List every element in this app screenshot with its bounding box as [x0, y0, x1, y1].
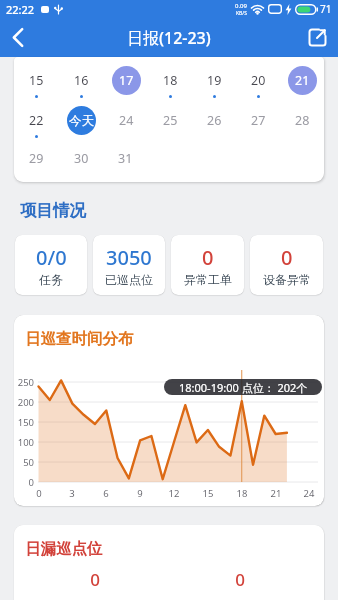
button[interactable]: 17	[112, 66, 141, 95]
button[interactable]: 0	[250, 235, 323, 295]
button[interactable]: 26	[200, 106, 229, 135]
staticText: 100	[14, 436, 34, 449]
staticText: 27	[251, 112, 266, 129]
button[interactable]: 29	[22, 144, 51, 173]
staticText: 19	[207, 72, 222, 89]
staticText: 0.09	[235, 2, 247, 10]
staticText: 31	[118, 150, 133, 167]
staticText: 0	[202, 244, 214, 271]
staticText: 今天	[69, 113, 94, 129]
staticText: 异常工单	[184, 272, 232, 287]
staticText: 0	[75, 568, 115, 591]
button[interactable]: 今天	[67, 106, 96, 135]
staticText: 0	[14, 476, 34, 489]
staticText: 日报(12-23)	[127, 27, 211, 49]
staticText: 29	[29, 150, 44, 167]
button[interactable]: 15	[22, 66, 51, 95]
staticText: 12	[165, 487, 183, 500]
button[interactable]: 27	[244, 106, 273, 135]
staticText: 24	[300, 487, 318, 500]
button[interactable]	[0, 18, 40, 57]
staticText: 25	[163, 112, 178, 129]
staticText: 150	[14, 416, 34, 429]
staticText: 设备异常	[263, 272, 311, 287]
button[interactable]: 20	[244, 66, 273, 95]
button[interactable]: 0	[171, 235, 244, 295]
staticText: 18:00-19:00 点位： 202个	[179, 380, 308, 395]
staticText: 0	[281, 244, 293, 271]
staticText: 日漏巡点位	[25, 539, 103, 559]
button[interactable]: 28	[288, 106, 317, 135]
button[interactable]: 30	[67, 144, 96, 173]
staticText: 项目情况	[20, 200, 86, 221]
button[interactable]	[296, 18, 338, 57]
staticText: KB/S	[236, 10, 247, 17]
staticText: 3	[63, 487, 81, 500]
staticText: 21	[295, 72, 310, 89]
staticText: 0	[30, 487, 48, 500]
staticText: 15	[29, 72, 44, 89]
staticText: 日巡查时间分布	[25, 329, 134, 349]
staticText: 200	[14, 396, 34, 409]
button[interactable]: 0/0	[15, 235, 87, 295]
staticText: 0	[220, 568, 260, 591]
button[interactable]: 21	[288, 66, 317, 95]
staticText: 3050	[106, 244, 152, 271]
staticText: 18	[163, 72, 178, 89]
staticText: 24	[119, 112, 134, 129]
staticText: 22:22	[6, 2, 35, 17]
button[interactable]: 22	[22, 106, 51, 135]
staticText: 250	[14, 376, 34, 389]
staticText: 26	[207, 112, 222, 129]
staticText: 18	[233, 487, 251, 500]
staticText: 9	[131, 487, 149, 500]
staticText: 50	[14, 456, 34, 469]
staticText: 17	[119, 72, 134, 89]
staticText: 0/0	[36, 244, 67, 271]
staticText: 21	[267, 487, 285, 500]
staticText: 20	[251, 72, 266, 89]
button[interactable]: 16	[67, 66, 96, 95]
button[interactable]: 31	[111, 144, 140, 173]
staticText: 28	[295, 112, 310, 129]
button[interactable]: 3050	[93, 235, 165, 295]
staticText: 30	[74, 150, 89, 167]
button[interactable]: 24	[112, 106, 141, 135]
staticText: 15	[199, 487, 217, 500]
staticText: 71	[320, 2, 332, 16]
button[interactable]: 19	[200, 66, 229, 95]
staticText: 22	[29, 112, 44, 129]
staticText: 16	[74, 72, 89, 89]
staticText: 6	[97, 487, 115, 500]
staticText: 已巡点位	[105, 272, 153, 287]
button[interactable]: 25	[156, 106, 185, 135]
button[interactable]: 18	[156, 66, 185, 95]
staticText: 任务	[39, 272, 63, 287]
